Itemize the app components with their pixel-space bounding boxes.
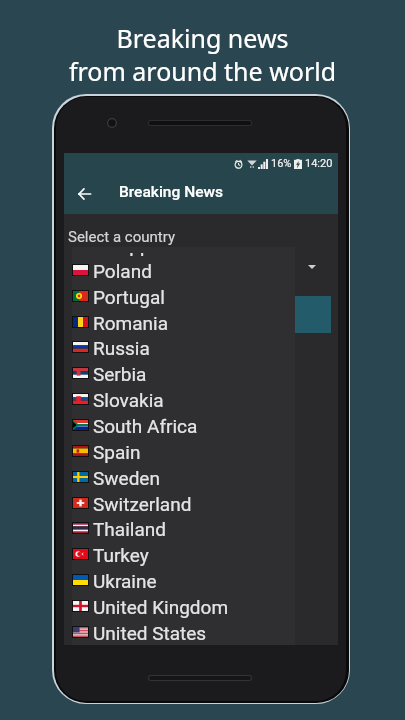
button[interactable]: Back	[68, 179, 100, 209]
button[interactable]: South Africa	[72, 413, 295, 439]
button[interactable]: Spain	[72, 439, 295, 465]
button[interactable]: Slovakia	[72, 387, 295, 413]
button[interactable]: Thailand	[72, 516, 295, 542]
staticText: Sweden	[93, 467, 160, 489]
button[interactable]: Sweden	[72, 465, 295, 491]
staticText: Poland	[93, 260, 152, 282]
staticText: Portugal	[93, 286, 165, 308]
staticText: Serbia	[93, 363, 147, 385]
staticText: United States	[93, 622, 207, 644]
staticText: South Africa	[93, 415, 198, 437]
button[interactable]: Portugal	[72, 284, 295, 310]
staticText: Breaking News	[119, 183, 223, 201]
staticText: from around the world	[0, 54, 405, 88]
staticText: Slovakia	[93, 389, 164, 411]
staticText: Select a country	[68, 228, 175, 246]
staticText: Switzerland	[93, 493, 192, 515]
staticText: Russia	[93, 337, 150, 359]
button[interactable]: Russia	[72, 335, 295, 361]
staticText: Ukraine	[93, 570, 157, 592]
button[interactable]: Switzerland	[72, 491, 295, 517]
staticText: Breaking news	[0, 21, 405, 55]
button[interactable]: Philippines	[72, 253, 295, 258]
button[interactable]: United States	[72, 620, 295, 646]
staticText: Turkey	[93, 544, 149, 566]
button[interactable]: Poland	[72, 258, 295, 284]
staticText: Spain	[93, 441, 141, 463]
staticText: 16%	[271, 157, 292, 170]
staticText: Romania	[93, 312, 168, 334]
button[interactable]: Turkey	[72, 542, 295, 568]
button[interactable]: Romania	[72, 310, 295, 336]
button[interactable]: Ukraine	[72, 568, 295, 594]
button[interactable]: Serbia	[72, 361, 295, 387]
button[interactable]: United Kingdom	[72, 594, 295, 620]
staticText: United Kingdom	[93, 596, 229, 618]
staticText: Thailand	[93, 518, 166, 540]
staticText: 14:20	[305, 157, 333, 170]
staticText: Philippines	[93, 253, 186, 256]
